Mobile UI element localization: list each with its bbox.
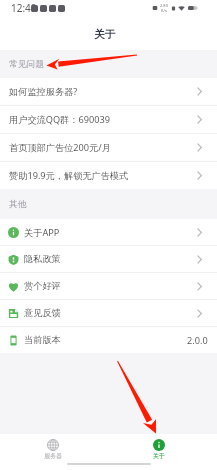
staticText: 如何监控服务器? <box>9 85 78 98</box>
staticText: 用户交流QQ群：690039 <box>9 113 111 126</box>
staticText: 意见反馈 <box>24 307 61 319</box>
button[interactable]: 服务器 <box>0 434 106 463</box>
button[interactable]: 首页顶部广告位200元/月 <box>0 134 217 161</box>
staticText: 服务器 <box>44 452 62 460</box>
button[interactable]: 关于APP <box>0 219 217 245</box>
staticText: K/s <box>161 8 167 13</box>
button[interactable]: 如何监控服务器? <box>0 78 217 105</box>
staticText: 关于APP <box>24 226 60 239</box>
staticText: 首页顶部广告位200元/月 <box>9 141 111 154</box>
staticText: 赞助19.9元，解锁无广告模式 <box>9 169 129 182</box>
button[interactable]: 赏个好评 <box>0 273 217 299</box>
button[interactable]: 当前版本 <box>0 327 217 353</box>
staticText: 隐私政策 <box>24 253 61 265</box>
button[interactable]: 隐私政策 <box>0 246 217 272</box>
staticText: 关于 <box>94 28 116 41</box>
button[interactable]: 赞助19.9元，解锁无广告模式 <box>0 162 217 189</box>
staticText: 常见问题 <box>9 59 45 70</box>
button[interactable]: 用户交流QQ群：690039 <box>0 106 217 133</box>
staticText: 关于 <box>153 452 165 460</box>
button[interactable]: 意见反馈 <box>0 300 217 326</box>
staticText: 赏个好评 <box>24 280 61 292</box>
staticText: 12:48 <box>11 1 37 15</box>
staticText: 当前版本 <box>24 334 61 346</box>
button[interactable]: 关于 <box>106 434 212 463</box>
staticText: 2.80 <box>160 3 168 8</box>
staticText: 2.0.0 <box>187 334 208 347</box>
staticText: 其他 <box>9 199 27 210</box>
